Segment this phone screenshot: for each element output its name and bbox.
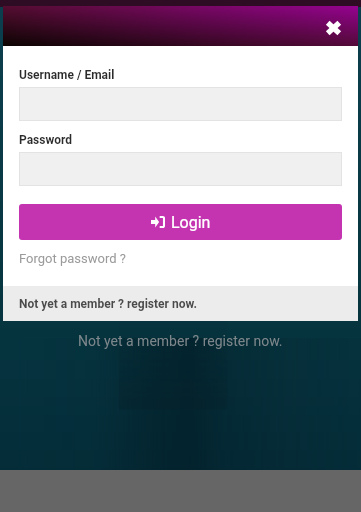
staticText: Not yet a member ? register now. xyxy=(19,297,198,311)
button[interactable]: Login xyxy=(19,204,342,240)
staticText: Not yet a member ? register now. xyxy=(78,333,283,349)
staticText: Forgot password ? xyxy=(19,251,126,266)
staticText: Username / Email xyxy=(19,68,115,82)
button[interactable]: Not yet a member ? register now. xyxy=(3,286,358,321)
button[interactable]: Close xyxy=(318,13,348,43)
button[interactable]: Not yet a member ? register now. xyxy=(0,331,361,351)
staticText: Login xyxy=(171,213,211,232)
button[interactable] xyxy=(19,87,342,121)
button[interactable]: Forgot password ? xyxy=(19,251,126,266)
button[interactable] xyxy=(19,152,342,186)
staticText: Password xyxy=(19,133,73,147)
